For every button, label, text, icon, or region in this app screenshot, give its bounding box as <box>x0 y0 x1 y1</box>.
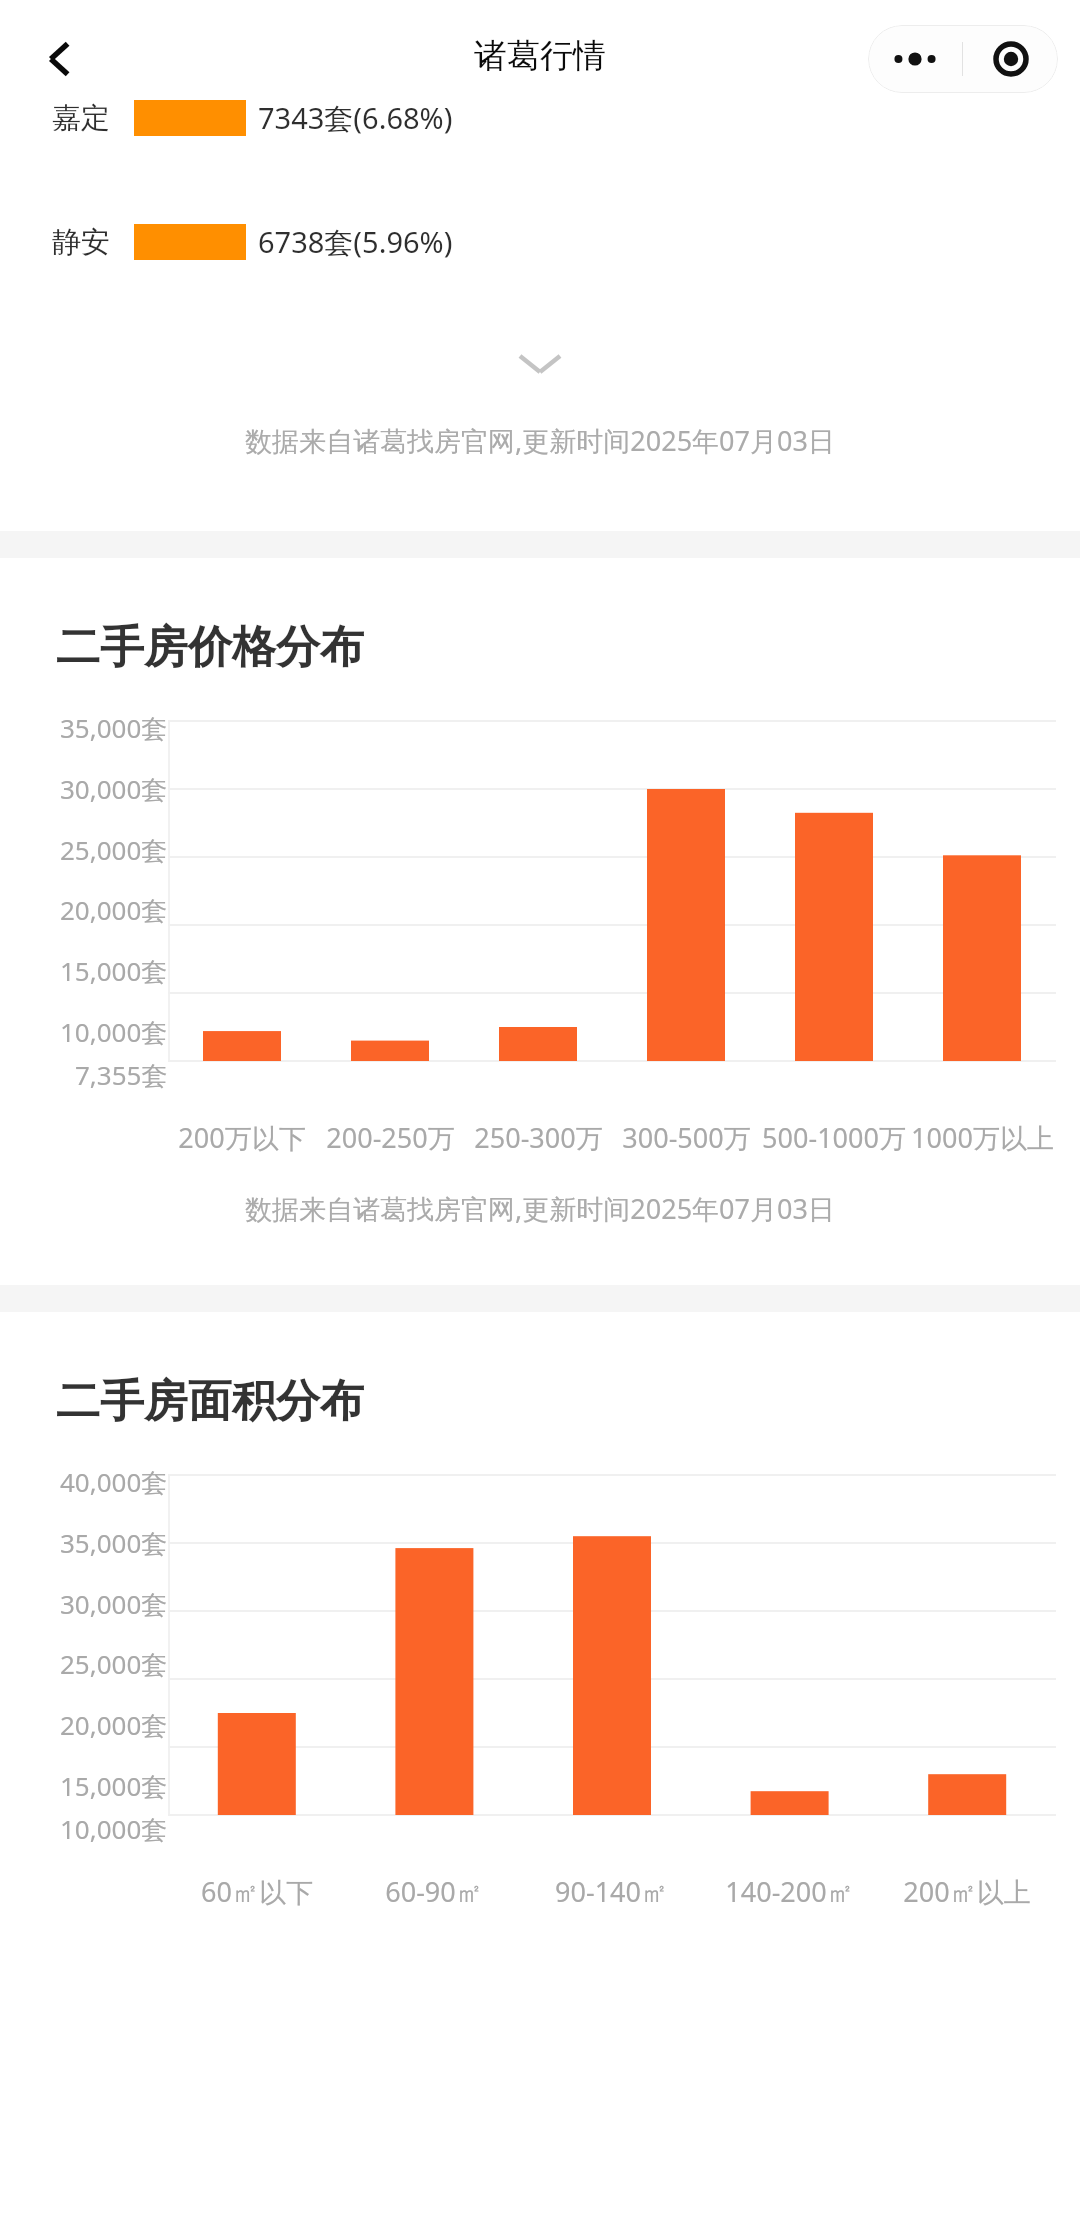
staticText: 250-300万 <box>474 1119 603 1156</box>
staticText: 1000万以上 <box>911 1119 1054 1156</box>
button[interactable]: Close mini program <box>963 25 1058 93</box>
staticText: 7,355套 <box>75 1057 168 1093</box>
button[interactable]: Back <box>22 21 98 97</box>
staticText: 30,000套 <box>60 1586 168 1622</box>
staticText: 静安 <box>52 224 110 261</box>
staticText: 300-500万 <box>622 1119 751 1156</box>
staticText: 60-90㎡ <box>385 1873 483 1910</box>
staticText: 数据来自诸葛找房官网,更新时间2025年07月03日 <box>0 422 1080 459</box>
staticText: 10,000套 <box>60 1811 168 1847</box>
staticText: 60㎡以下 <box>201 1873 313 1910</box>
staticText: 35,000套 <box>60 1525 168 1561</box>
staticText: 嘉定 <box>52 100 110 137</box>
staticText: 20,000套 <box>60 1707 168 1743</box>
button[interactable]: Expand more <box>0 336 1080 392</box>
staticText: 500-1000万 <box>762 1119 906 1156</box>
staticText: 40,000套 <box>60 1464 168 1500</box>
staticText: 200-250万 <box>326 1119 455 1156</box>
staticText: 诸葛行情 <box>474 35 606 77</box>
staticText: 90-140㎡ <box>555 1873 668 1910</box>
staticText: 140-200㎡ <box>725 1873 854 1910</box>
staticText: 二手房价格分布 <box>56 620 364 675</box>
staticText: 15,000套 <box>60 1768 168 1804</box>
staticText: 数据来自诸葛找房官网,更新时间2025年07月03日 <box>0 1190 1080 1227</box>
staticText: 10,000套 <box>60 1014 168 1050</box>
staticText: 30,000套 <box>60 771 168 807</box>
staticText: 15,000套 <box>60 953 168 989</box>
staticText: 20,000套 <box>60 892 168 928</box>
button[interactable]: More options <box>868 25 962 93</box>
staticText: 200万以下 <box>178 1119 306 1156</box>
staticText: 200㎡以上 <box>903 1873 1031 1910</box>
staticText: 7343套(6.68%) <box>258 98 453 138</box>
staticText: 35,000套 <box>60 710 168 746</box>
staticText: 二手房面积分布 <box>56 1374 364 1429</box>
staticText: 25,000套 <box>60 832 168 868</box>
staticText: 25,000套 <box>60 1646 168 1682</box>
staticText: 6738套(5.96%) <box>258 222 453 262</box>
